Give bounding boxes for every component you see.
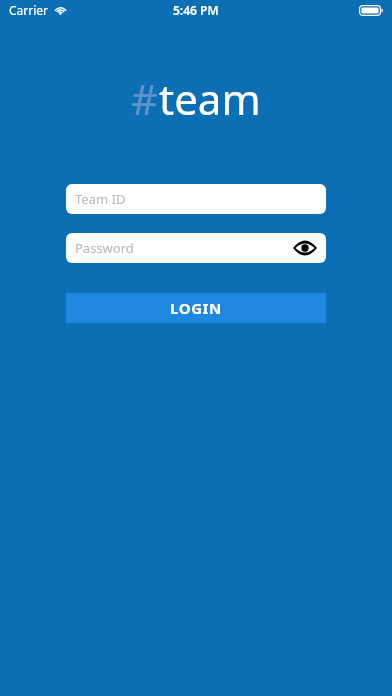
staticText: LOGIN xyxy=(170,298,222,318)
staticText: Password xyxy=(75,239,134,257)
button[interactable]: Password xyxy=(66,233,326,263)
button[interactable]: Show password xyxy=(292,237,318,259)
staticText: Carrier xyxy=(9,2,49,18)
button[interactable]: Team ID xyxy=(66,184,326,214)
button[interactable]: LOGIN xyxy=(66,293,326,323)
staticText: 5:46 PM xyxy=(173,2,219,18)
staticText: # xyxy=(131,70,159,127)
staticText: Team ID xyxy=(75,190,126,208)
staticText: team xyxy=(159,70,261,127)
